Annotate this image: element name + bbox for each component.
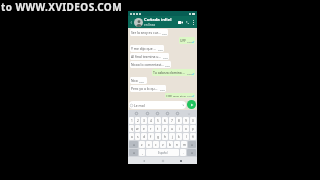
button[interactable]: r [148,125,154,132]
button[interactable]: i [176,125,182,132]
staticText: Le mol [134,103,182,108]
staticText: 9:56 [187,94,192,97]
button[interactable]: l [183,133,189,140]
button[interactable]: x [146,141,152,148]
staticText: Cuñada infiel [144,17,172,23]
button[interactable]: Enter [187,149,196,156]
staticText: 8 [178,119,180,123]
staticText: 9:56 [165,64,170,67]
button[interactable]: UFF [179,37,195,44]
button[interactable]: e [141,125,147,132]
button[interactable]: p [190,125,196,132]
staticText: a [131,135,133,139]
button[interactable]: Expand [186,111,191,116]
staticText: 9:56 [162,32,167,35]
button[interactable]: Backspace [188,141,196,148]
button[interactable]: 7 [169,117,175,124]
button[interactable]: c [153,141,159,148]
staticText: , [142,151,143,155]
button[interactable]: 4 [148,117,154,124]
button[interactable]: Nooo lo comentaste todo [130,61,171,68]
button[interactable]: Space [146,149,179,156]
staticText: s [137,135,139,139]
staticText: Ser la sexy es curioso [131,30,161,35]
button[interactable]: Pero yo a lo que podia [130,85,166,92]
button[interactable]: , [139,149,145,156]
button[interactable]: Keyboard tool 3 [155,111,160,116]
button[interactable]: k [176,133,182,140]
staticText: l [186,135,187,139]
button[interactable]: 8 [176,117,182,124]
button[interactable]: Cuñada infiel [144,17,177,27]
button[interactable]: Home [160,158,166,164]
button[interactable]: m [181,141,187,148]
button[interactable]: a [129,133,134,140]
button[interactable]: Back [141,158,147,164]
staticText: y [164,127,166,131]
button[interactable]: Video call [177,19,184,26]
button[interactable]: Tu cabeza domina lo grave? [152,69,195,76]
button[interactable]: Voice call [184,19,191,26]
button[interactable]: n [174,141,180,148]
button[interactable]: 2 [135,117,140,124]
staticText: 7 [171,119,173,123]
button[interactable]: v [160,141,166,148]
button[interactable]: Shift [129,141,138,148]
button[interactable]: 9 [183,117,189,124]
button[interactable]: f [148,133,154,140]
staticText: t [157,127,159,131]
button[interactable]: Back [129,20,134,25]
button[interactable]: Al final tezmina un infi [130,53,169,60]
button[interactable]: Le mol [129,101,186,109]
button[interactable]: q [129,125,134,132]
button[interactable]: y [162,125,168,132]
button[interactable]: d [141,133,147,140]
staticText: Y me dijo que no [131,46,157,51]
button[interactable]: 1 [129,117,134,124]
button[interactable]: Keyboard tool 2 [145,111,150,116]
button[interactable]: Send [187,100,196,109]
button[interactable]: Keyboard tool 4 [165,111,170,116]
button[interactable]: Ser la sexy es curioso [130,29,168,36]
button[interactable]: 3 [141,117,147,124]
staticText: 5 [157,119,159,123]
button[interactable]: Noo [130,77,147,84]
staticText: Al final tezmina un infi [131,54,162,59]
staticText: d [143,135,145,139]
staticText: z [141,143,143,147]
button[interactable]: . [180,149,186,156]
button[interactable]: Recents [178,158,184,164]
button[interactable]: 0 [190,117,196,124]
button[interactable]: g [155,133,161,140]
staticText: i [179,127,180,131]
button[interactable]: Symbols [129,149,138,156]
button[interactable]: o [183,125,189,132]
button[interactable]: j [169,133,175,140]
button[interactable]: 5 [155,117,161,124]
staticText: 6 [164,119,166,123]
button[interactable]: UFF que rico [165,93,195,98]
button[interactable]: w [135,125,140,132]
button[interactable]: b [167,141,173,148]
button[interactable]: ñ [190,133,196,140]
button[interactable]: h [162,133,168,140]
staticText: en línea [144,23,156,27]
button[interactable]: Keyboard tool 1 [134,111,139,116]
staticText: 9 [185,119,187,123]
staticText: Español [158,151,168,155]
staticText: to WWW.XVIDEOS.COM [1,0,123,12]
button[interactable]: Keyboard tool 5 [175,111,180,116]
button[interactable]: 6 [162,117,168,124]
button[interactable]: u [169,125,175,132]
button[interactable]: More options [191,20,196,25]
button[interactable]: s [135,133,140,140]
staticText: 9:56 [187,72,192,75]
button[interactable]: t [155,125,161,132]
button[interactable]: Contact photo [134,18,143,27]
staticText: Tu cabeza domina lo grave? [153,70,186,75]
button[interactable]: Y me dijo que no [130,45,164,52]
staticText: p [192,127,194,131]
staticText: . [183,151,184,155]
staticText: 9:56 [158,48,163,51]
button[interactable]: z [139,141,145,148]
